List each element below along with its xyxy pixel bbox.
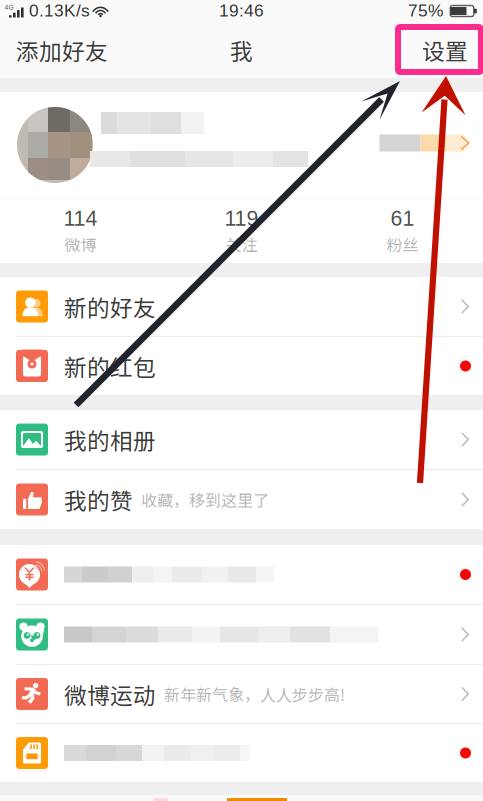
button[interactable]: 114 <box>0 199 161 263</box>
button[interactable]: 119 <box>161 199 322 263</box>
staticText: 119 <box>224 206 258 230</box>
button[interactable]: 添加好友 <box>0 22 120 78</box>
staticText: 粉丝 <box>386 232 418 255</box>
staticText: 我 <box>230 34 253 66</box>
staticText: 61 <box>390 206 414 230</box>
button[interactable]: 设置 <box>410 22 483 78</box>
staticText: 添加好友 <box>16 34 108 66</box>
button[interactable]: 我 <box>209 797 305 801</box>
staticText: 114 <box>63 206 97 230</box>
staticText: 微博运动 <box>64 678 156 710</box>
staticText: 我的相册 <box>64 423 156 456</box>
button[interactable]: 消息 <box>113 797 209 801</box>
staticText: 设置 <box>422 34 468 66</box>
button[interactable]: 微博运动 <box>0 665 483 723</box>
staticText: 75% <box>408 1 443 20</box>
button[interactable] <box>0 724 483 782</box>
staticText: 新的好友 <box>64 290 156 323</box>
staticText: 关注 <box>225 232 257 255</box>
staticText: 4G <box>4 4 13 11</box>
staticText: 0.13K/s <box>29 1 90 20</box>
button[interactable] <box>0 545 483 604</box>
staticText: 19:46 <box>219 1 264 20</box>
staticText: 收藏，移到这里了 <box>141 488 269 511</box>
button[interactable] <box>0 92 483 198</box>
staticText: 新年新气象，人人步步高! <box>164 682 345 706</box>
button[interactable]: 新的红包 <box>0 337 483 395</box>
staticText: 新的红包 <box>64 350 156 382</box>
button[interactable]: 我的相册 <box>0 410 483 469</box>
button[interactable]: 61 <box>322 199 483 263</box>
staticText: 我的赞 <box>64 483 133 516</box>
staticText: 微博 <box>64 232 96 255</box>
button[interactable]: 新的好友 <box>0 277 483 336</box>
button[interactable]: 我的赞 <box>0 470 483 529</box>
button[interactable] <box>0 605 483 664</box>
